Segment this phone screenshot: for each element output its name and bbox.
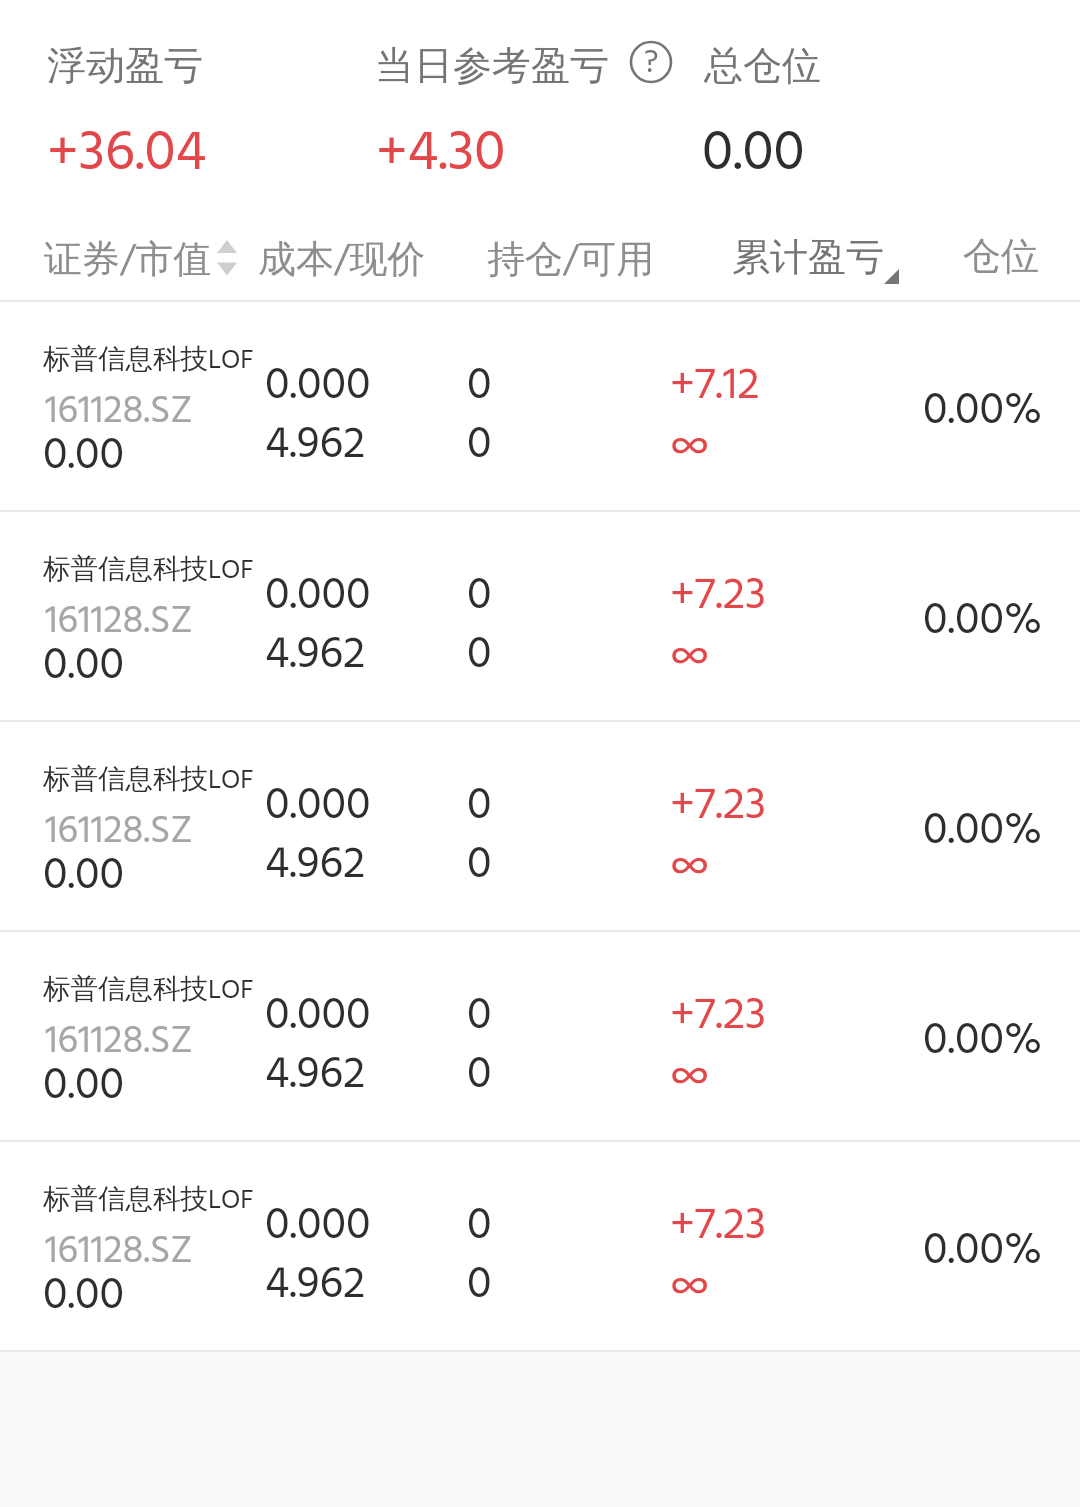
staticText: +7.23 bbox=[670, 981, 766, 1053]
staticText: +4.30 bbox=[376, 109, 506, 200]
staticText: 4.962 bbox=[265, 1040, 366, 1112]
staticText: 0.00% bbox=[923, 1006, 1043, 1078]
staticText: 4.962 bbox=[265, 1250, 366, 1322]
staticText: 标普信息科技LOF bbox=[43, 759, 254, 803]
staticText: ∞ bbox=[670, 622, 710, 697]
staticText: 161128.SZ bbox=[45, 801, 193, 863]
staticText: 0.00% bbox=[923, 796, 1043, 868]
button[interactable]: 证券/市值 bbox=[30, 222, 250, 292]
staticText: 持仓/可用 bbox=[487, 232, 655, 293]
staticText: ∞ bbox=[670, 1042, 710, 1117]
staticText: 标普信息科技LOF bbox=[43, 969, 254, 1013]
button[interactable]: 标普信息科技LOF bbox=[0, 722, 1080, 930]
staticText: 0.000 bbox=[265, 981, 371, 1053]
staticText: 161128.SZ bbox=[45, 1011, 193, 1073]
staticText: +7.12 bbox=[670, 351, 760, 423]
button[interactable]: 仓位 bbox=[949, 222, 1069, 292]
staticText: 标普信息科技LOF bbox=[43, 1179, 254, 1223]
staticText: 0.00 bbox=[43, 1051, 124, 1123]
staticText: 161128.SZ bbox=[45, 1221, 193, 1283]
button[interactable]: Help, about today's reference profit bbox=[628, 39, 674, 85]
staticText: 0 bbox=[467, 830, 492, 902]
staticText: ∞ bbox=[670, 412, 710, 487]
staticText: 0 bbox=[467, 981, 492, 1053]
staticText: 4.962 bbox=[265, 830, 366, 902]
staticText: 标普信息科技LOF bbox=[43, 549, 254, 593]
staticText: 0.000 bbox=[265, 351, 371, 423]
button[interactable]: 成本/现价 bbox=[244, 222, 444, 292]
staticText: 0.000 bbox=[265, 771, 371, 843]
button[interactable]: 标普信息科技LOF bbox=[0, 1142, 1080, 1350]
staticText: 161128.SZ bbox=[45, 381, 193, 443]
staticText: 成本/现价 bbox=[258, 232, 426, 293]
staticText: 0 bbox=[467, 1040, 492, 1112]
staticText: 0.00 bbox=[43, 421, 124, 493]
staticText: ∞ bbox=[670, 1252, 710, 1327]
staticText: 0.00 bbox=[702, 109, 805, 200]
staticText: +7.23 bbox=[670, 1191, 766, 1263]
staticText: 0.00% bbox=[923, 376, 1043, 448]
button[interactable]: 标普信息科技LOF bbox=[0, 512, 1080, 720]
staticText: 4.962 bbox=[265, 410, 366, 482]
staticText: 0 bbox=[467, 1250, 492, 1322]
staticText: 仓位 bbox=[963, 232, 1039, 280]
button[interactable]: 标普信息科技LOF bbox=[0, 932, 1080, 1140]
staticText: 0.00 bbox=[43, 841, 124, 913]
staticText: 161128.SZ bbox=[45, 591, 193, 653]
staticText: +36.04 bbox=[47, 109, 207, 200]
staticText: 4.962 bbox=[265, 620, 366, 692]
staticText: 0.00 bbox=[43, 1261, 124, 1333]
staticText: 0.00% bbox=[923, 1216, 1043, 1288]
button[interactable]: 标普信息科技LOF bbox=[0, 302, 1080, 510]
staticText: 0 bbox=[467, 561, 492, 633]
staticText: 0 bbox=[467, 351, 492, 423]
button[interactable]: 持仓/可用 bbox=[473, 222, 673, 292]
staticText: 0.00 bbox=[43, 631, 124, 703]
staticText: 0 bbox=[467, 1191, 492, 1263]
staticText: 0 bbox=[467, 771, 492, 843]
staticText: 总仓位 bbox=[704, 41, 821, 90]
staticText: 标普信息科技LOF bbox=[43, 339, 254, 383]
button[interactable]: 累计盈亏 bbox=[720, 222, 915, 292]
staticText: +7.23 bbox=[670, 771, 766, 843]
staticText: 0 bbox=[467, 410, 492, 482]
staticText: +7.23 bbox=[670, 561, 766, 633]
staticText: 当日参考盈亏 bbox=[375, 41, 609, 90]
staticText: 0 bbox=[467, 620, 492, 692]
staticText: ∞ bbox=[670, 832, 710, 907]
staticText: 0.000 bbox=[265, 1191, 371, 1263]
staticText: 0.000 bbox=[265, 561, 371, 633]
staticText: 证券/市值 bbox=[44, 232, 212, 293]
staticText: 浮动盈亏 bbox=[47, 41, 203, 90]
staticText: 0.00% bbox=[923, 586, 1043, 658]
staticText: ? bbox=[644, 38, 659, 84]
staticText: 累计盈亏 bbox=[732, 233, 884, 281]
